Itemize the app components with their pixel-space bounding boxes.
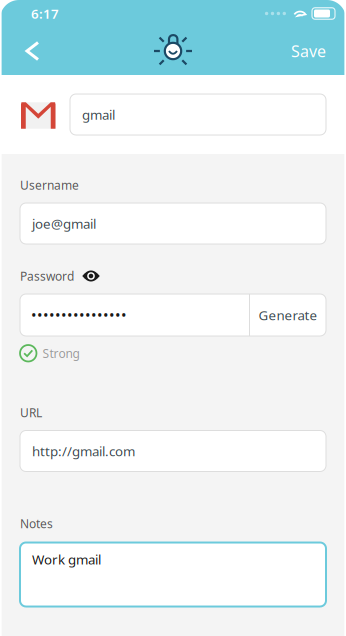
button[interactable]: Work gmail <box>20 542 326 606</box>
staticText: joe@gmail <box>32 215 96 232</box>
staticText: Generate <box>258 306 317 324</box>
button[interactable]: Show password <box>82 269 100 283</box>
staticText: •••••••••••••••• <box>31 305 127 325</box>
staticText: Strong <box>42 345 79 361</box>
button[interactable]: joe@gmail <box>20 203 326 244</box>
staticText: Username <box>20 177 79 193</box>
button[interactable]: Save <box>277 27 346 75</box>
button[interactable]: http://gmail.com <box>20 430 326 471</box>
button[interactable]: Back <box>0 27 52 75</box>
button[interactable]: gmail <box>70 94 326 135</box>
staticText: Work gmail <box>32 550 101 568</box>
button[interactable]: Generate <box>250 294 326 336</box>
staticText: http://gmail.com <box>32 442 135 460</box>
staticText: Notes <box>20 515 53 531</box>
staticText: Password <box>20 268 74 284</box>
staticText: gmail <box>82 106 115 123</box>
staticText: URL <box>20 404 42 420</box>
staticText: 6:17 <box>31 5 59 22</box>
staticText: Save <box>291 40 326 62</box>
